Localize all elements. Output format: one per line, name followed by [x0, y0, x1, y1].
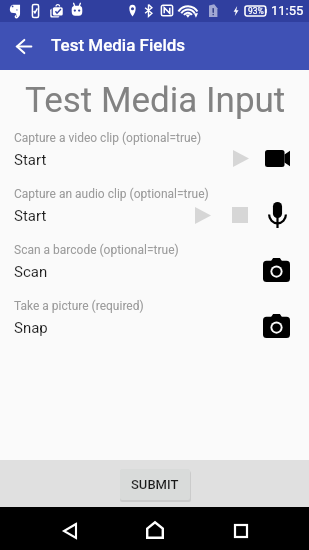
- button[interactable]: Take a picture (required): [0, 293, 309, 349]
- staticText: 11:55: [271, 3, 304, 18]
- button[interactable]: Back: [49, 517, 91, 545]
- button[interactable]: Take a picture: [261, 256, 291, 284]
- staticText: Test Media Fields: [51, 35, 186, 55]
- staticText: Snap: [14, 319, 48, 337]
- button[interactable]: Record video: [262, 146, 292, 170]
- button[interactable]: Home: [133, 516, 176, 544]
- button[interactable]: Play: [231, 146, 251, 170]
- button[interactable]: Recent apps: [220, 517, 262, 545]
- staticText: SUBMIT: [131, 477, 179, 492]
- button[interactable]: Record audio: [264, 200, 290, 230]
- button[interactable]: Play: [193, 203, 213, 227]
- staticText: Take a picture (required): [14, 299, 144, 313]
- staticText: Test Media Input: [25, 80, 286, 121]
- button[interactable]: Scan a barcode (optional=true): [0, 237, 309, 293]
- button[interactable]: Take a picture: [261, 312, 291, 340]
- staticText: Capture a video clip (optional=true): [14, 131, 202, 145]
- button[interactable]: SUBMIT: [120, 469, 190, 500]
- button[interactable]: Stop: [229, 203, 251, 227]
- button[interactable]: Capture an audio clip (optional=true): [0, 181, 309, 237]
- staticText: Start: [14, 207, 47, 225]
- staticText: Scan a barcode (optional=true): [14, 243, 179, 257]
- staticText: Start: [14, 151, 47, 169]
- staticText: Capture an audio clip (optional=true): [14, 187, 209, 201]
- button[interactable]: Capture a video clip (optional=true): [0, 125, 309, 181]
- staticText: 93%: [248, 6, 264, 16]
- button[interactable]: Navigate up: [0, 22, 48, 70]
- staticText: Scan: [14, 263, 48, 281]
